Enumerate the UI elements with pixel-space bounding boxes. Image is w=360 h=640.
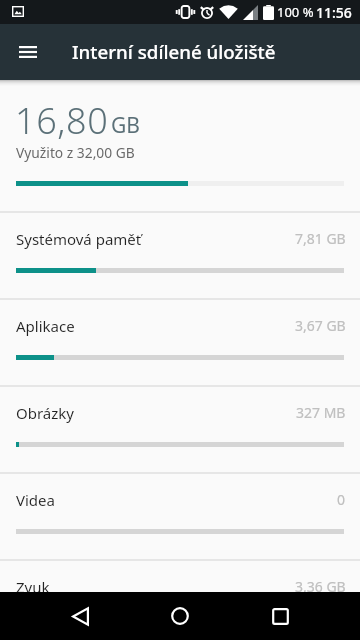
staticText: Využito z 32,00 GB xyxy=(16,143,135,162)
button[interactable]: Zpět xyxy=(44,592,116,640)
button[interactable]: Přehled aplikací xyxy=(244,592,316,640)
staticText: Systémová paměť xyxy=(16,229,142,249)
button[interactable]: Obrázky xyxy=(0,385,360,472)
staticText: 100 % xyxy=(277,3,314,21)
button[interactable]: Otevřít navigaci xyxy=(0,24,56,80)
staticText: Aplikace xyxy=(16,316,75,336)
staticText: Zvuk xyxy=(16,577,50,597)
staticText: 0 xyxy=(337,490,346,509)
staticText: 11:56 xyxy=(316,3,352,22)
staticText: 16,80 xyxy=(15,96,109,145)
button[interactable]: 16,80 xyxy=(0,80,360,211)
button[interactable]: Aplikace xyxy=(0,298,360,385)
staticText: 327 MB xyxy=(296,403,346,422)
button[interactable]: Domů xyxy=(144,592,216,640)
staticText: 3,36 GB xyxy=(295,577,346,596)
staticText: Obrázky xyxy=(16,403,74,423)
staticText: Interní sdílené úložiště xyxy=(72,39,276,64)
staticText: Videa xyxy=(16,490,55,510)
staticText: 3,67 GB xyxy=(295,316,346,335)
staticText: GB xyxy=(111,111,140,140)
button[interactable]: Zvuk xyxy=(0,559,360,640)
staticText: 7,81 GB xyxy=(295,229,346,248)
button[interactable]: Videa xyxy=(0,472,360,559)
button[interactable]: Systémová paměť xyxy=(0,211,360,298)
